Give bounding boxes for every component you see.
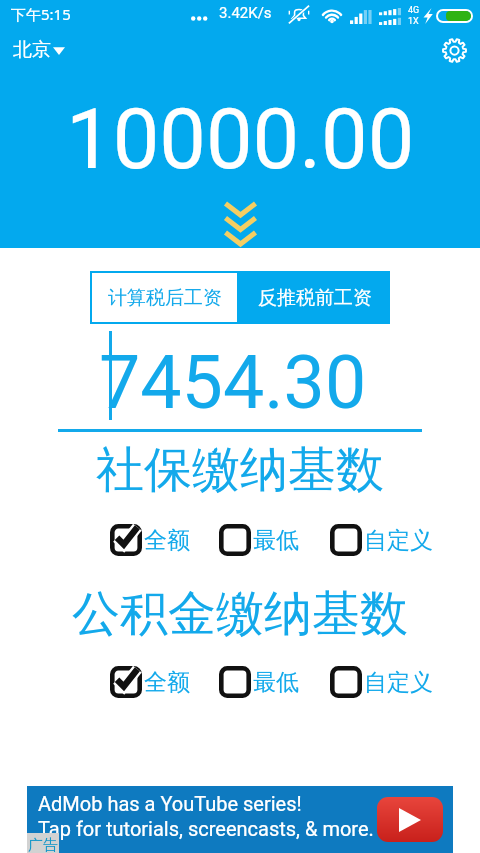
button[interactable]: 反推税前工资 [239,271,390,324]
staticText: 自定义 [364,668,433,697]
button[interactable]: 最低 [219,517,265,557]
button[interactable]: 自定义 [330,517,399,557]
staticText: 最低 [253,668,299,697]
button[interactable]: 计算税后工资 [90,271,239,324]
staticText: 下午5:15 [11,4,71,24]
staticText: 反推税前工资 [258,286,372,310]
button[interactable]: Settings [434,30,474,70]
staticText: 全额 [144,526,190,555]
button[interactable]: 全额 [110,517,156,557]
staticText: 自定义 [364,526,433,555]
button[interactable]: 最低 [219,659,265,699]
button[interactable]: 北京 [13,38,65,62]
staticText: 公积金缴纳基数 [0,584,480,644]
staticText: 10000.00 [66,91,415,188]
staticText: 北京 [13,38,51,62]
staticText: 社保缴纳基数 [0,440,480,500]
staticText: 7454.30 [99,340,367,426]
staticText: 广告 [28,836,58,853]
staticText: 全额 [144,668,190,697]
staticText: AdMob has a YouTube series! [38,792,302,815]
button[interactable]: 全额 [110,659,156,699]
staticText: 3.42K/s [219,4,272,22]
button[interactable]: 自定义 [330,659,399,699]
staticText: Tap for tutorials, screencasts, & more. [38,817,374,840]
staticText: 4G [408,5,420,16]
staticText: 计算税后工资 [108,286,222,310]
staticText: 1X [408,16,419,27]
button[interactable]: AdMob has a YouTube series! [27,786,453,853]
staticText: 最低 [253,526,299,555]
